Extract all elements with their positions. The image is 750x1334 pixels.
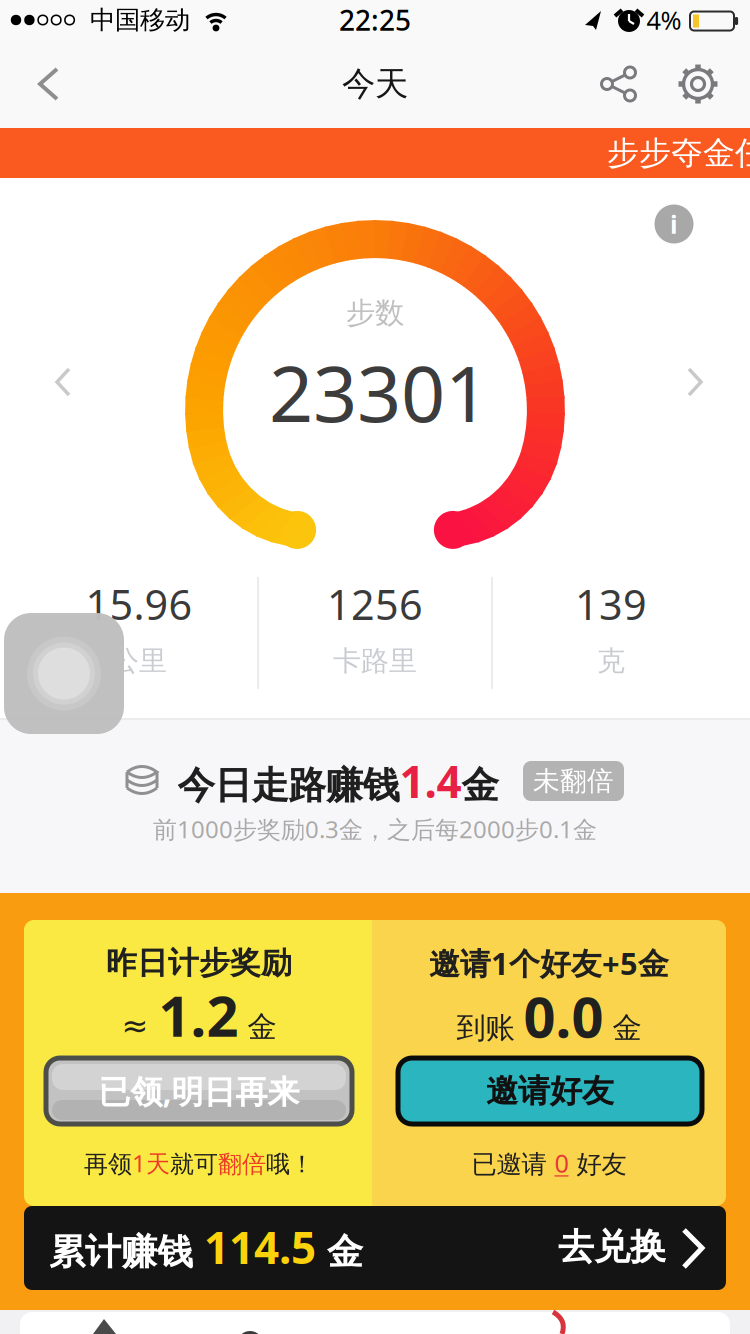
staticText: 好友 xyxy=(568,1149,626,1180)
staticText: 0.0 xyxy=(523,979,603,1053)
staticText: 哦！ xyxy=(266,1149,314,1179)
staticText: 公里 xyxy=(111,644,167,678)
staticText: 已领,明日再来 xyxy=(98,1070,299,1112)
staticText: 步数 xyxy=(346,295,404,331)
staticText: i xyxy=(670,207,678,241)
staticText: 22:25 xyxy=(339,1,411,39)
staticText: 金 xyxy=(461,763,498,809)
staticText: 今天 xyxy=(342,63,408,104)
staticText: 已邀请 xyxy=(471,1149,554,1180)
staticText: 前1000步奖励0.3金，之后每2000步0.1金 xyxy=(153,813,597,845)
staticText: 1.2 xyxy=(158,978,238,1052)
staticText: 步步夺金任何 xyxy=(607,133,750,173)
staticText: 今日走路赚钱 xyxy=(177,763,399,809)
staticText: 累计赚钱 xyxy=(49,1230,204,1274)
staticText: 1天 xyxy=(132,1147,170,1179)
staticText: 翻倍 xyxy=(218,1149,266,1179)
staticText: 克 xyxy=(597,644,625,678)
staticText: 4% xyxy=(646,3,681,37)
staticText: 金 xyxy=(316,1230,363,1274)
staticText: 邀请好友 xyxy=(486,1071,614,1111)
staticText: 金 xyxy=(238,1009,276,1045)
staticText: 1256 xyxy=(327,577,423,631)
staticText: 139 xyxy=(575,577,647,631)
staticText: 23301 xyxy=(269,341,489,443)
staticText: 去兑换 xyxy=(558,1225,666,1269)
staticText: 未翻倍 xyxy=(533,765,614,797)
staticText: ≈ xyxy=(121,1007,158,1044)
staticText: 邀请1个好友+5金 xyxy=(429,943,669,983)
staticText: 昨日计步奖励 xyxy=(106,944,292,982)
staticText: 到账 xyxy=(456,1010,523,1046)
staticText: 卡路里 xyxy=(333,644,417,678)
staticText: 就可 xyxy=(170,1149,218,1179)
staticText: 1.4 xyxy=(399,752,461,810)
staticText: 15.96 xyxy=(85,577,192,631)
staticText: 0 xyxy=(554,1146,568,1180)
staticText: 114.5 xyxy=(204,1218,316,1276)
staticText: 中国移动 xyxy=(90,4,190,35)
staticText: 金 xyxy=(603,1010,641,1046)
staticText: 再领 xyxy=(84,1149,132,1179)
